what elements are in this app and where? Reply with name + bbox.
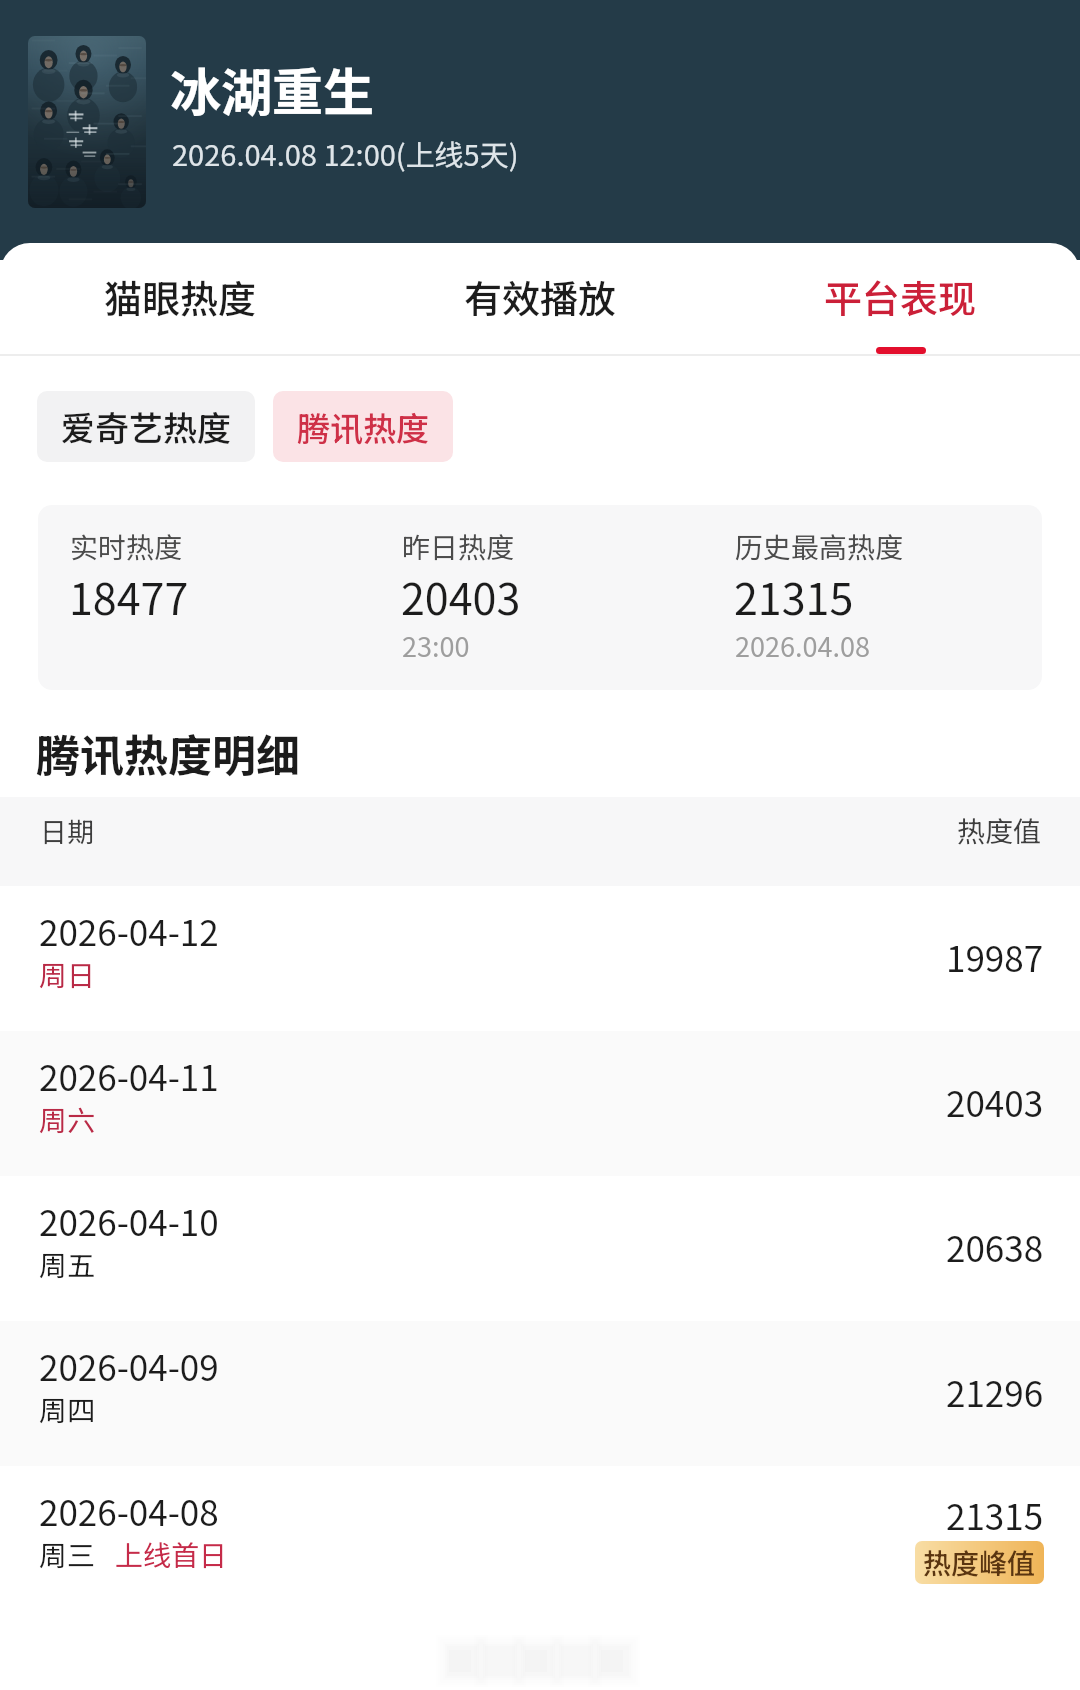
staticText: 20638 bbox=[946, 1221, 1044, 1272]
staticText: 周三 bbox=[39, 1534, 96, 1575]
staticText: 2026.04.08 12:00(上线5天) bbox=[172, 132, 519, 174]
button[interactable]: 平台表现 bbox=[720, 243, 1080, 354]
button[interactable]: 猫眼热度 bbox=[0, 243, 360, 354]
staticText: 21315 bbox=[946, 1489, 1044, 1540]
staticText: 猫眼热度 bbox=[104, 269, 257, 324]
staticText: 20403 bbox=[401, 565, 521, 627]
staticText: 冰湖重生 bbox=[170, 52, 375, 126]
button[interactable]: 2026-04-11 bbox=[0, 1031, 1080, 1176]
staticText: 2026-04-08 bbox=[39, 1485, 219, 1536]
button[interactable]: 2026-04-10 bbox=[0, 1176, 1080, 1321]
button[interactable]: 有效播放 bbox=[360, 243, 720, 354]
staticText: 2026.04.08 bbox=[735, 626, 870, 665]
staticText: 周四 bbox=[39, 1389, 96, 1430]
staticText: 日期 bbox=[40, 811, 94, 850]
staticText: 周六 bbox=[39, 1099, 96, 1140]
staticText: 2026-04-12 bbox=[39, 905, 219, 956]
staticText: 热度值 bbox=[957, 810, 1042, 851]
staticText: 18477 bbox=[69, 565, 189, 627]
staticText: 平台表现 bbox=[824, 269, 977, 324]
button[interactable]: 冰湖重生 海报 bbox=[28, 36, 146, 208]
staticText: 23:00 bbox=[402, 626, 470, 665]
staticText: 昨日热度 bbox=[402, 526, 515, 567]
button[interactable]: 2026-04-09 bbox=[0, 1321, 1080, 1466]
staticText: 上线首日 bbox=[115, 1534, 228, 1575]
button[interactable]: 冰湖重生 bbox=[166, 40, 546, 185]
staticText: 周日 bbox=[39, 954, 96, 995]
button[interactable]: 2026-04-12 bbox=[0, 886, 1080, 1031]
staticText: 实时热度 bbox=[70, 526, 183, 567]
staticText: 热度峰值 bbox=[923, 1542, 1036, 1583]
button[interactable]: 爱奇艺热度 bbox=[37, 391, 255, 462]
staticText: 腾讯热度 bbox=[297, 403, 429, 451]
staticText: 2026-04-09 bbox=[39, 1340, 219, 1391]
staticText: 有效播放 bbox=[464, 269, 617, 324]
staticText: 腾讯热度明细 bbox=[36, 721, 300, 785]
staticText: 2026-04-11 bbox=[39, 1050, 219, 1101]
button[interactable]: 2026-04-08 bbox=[0, 1466, 1080, 1611]
staticText: 2026-04-10 bbox=[39, 1195, 219, 1246]
button[interactable]: 腾讯热度 bbox=[273, 391, 453, 462]
staticText: 21315 bbox=[734, 565, 854, 627]
staticText: 21296 bbox=[946, 1366, 1044, 1417]
staticText: 周五 bbox=[39, 1244, 96, 1285]
staticText: 19987 bbox=[946, 931, 1044, 982]
staticText: 历史最高热度 bbox=[735, 526, 904, 567]
staticText: 爱奇艺热度 bbox=[61, 402, 231, 451]
staticText: 20403 bbox=[946, 1076, 1044, 1127]
